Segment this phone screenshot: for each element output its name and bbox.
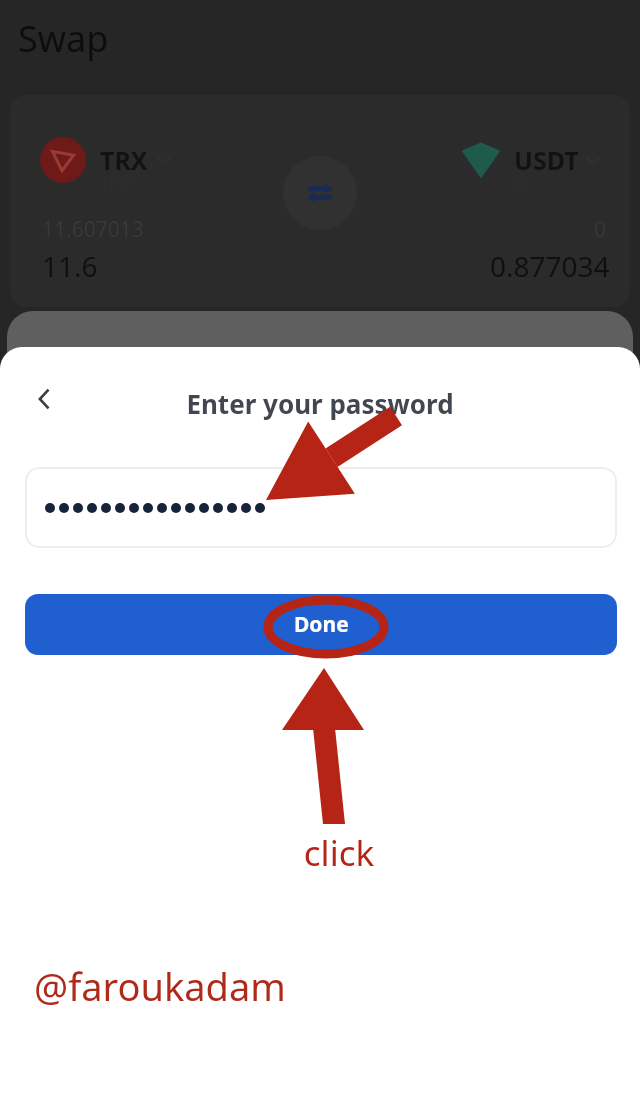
staticText: 11.607013: [42, 215, 144, 244]
button[interactable]: [25, 467, 617, 548]
staticText: 11.6: [42, 247, 98, 285]
button[interactable]: Back: [20, 375, 68, 423]
button[interactable]: Switch tokens: [283, 156, 357, 230]
staticText: 0.877034: [490, 247, 610, 285]
staticText: @faroukadam: [34, 960, 286, 1012]
button[interactable]: Done: [25, 594, 617, 655]
staticText: Done: [294, 610, 349, 639]
staticText: 0: [594, 215, 607, 244]
staticText: Enter your password: [0, 386, 640, 421]
button[interactable]: TRX: [40, 137, 172, 183]
button[interactable]: USDT: [458, 137, 601, 183]
staticText: Swap: [18, 14, 109, 63]
staticText: TRX: [100, 143, 148, 177]
staticText: click: [19, 829, 640, 877]
staticText: USDT: [514, 143, 579, 177]
